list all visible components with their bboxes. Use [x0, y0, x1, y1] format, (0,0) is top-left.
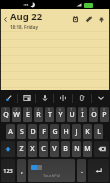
staticText: . [81, 166, 83, 176]
staticText: W [13, 110, 20, 120]
button[interactable]: P [100, 107, 109, 122]
button[interactable]: W [12, 107, 21, 122]
staticText: P [102, 110, 107, 120]
staticText: X [30, 144, 35, 154]
button[interactable]: F [39, 124, 48, 139]
button[interactable]: Hide keyboard [92, 90, 110, 106]
staticText: N [74, 144, 80, 154]
button[interactable]: . [77, 159, 86, 182]
button[interactable]: Layout [18, 90, 35, 106]
staticText: 7 [70, 107, 73, 112]
button[interactable]: L [94, 124, 103, 139]
staticText: B [63, 144, 68, 154]
staticText: H [63, 127, 69, 137]
staticText: C [41, 144, 46, 154]
button[interactable]: Q [1, 107, 10, 122]
staticText: K [85, 127, 90, 137]
staticText: 2 [15, 107, 18, 112]
button[interactable]: K [83, 124, 92, 139]
staticText: Y [58, 110, 63, 120]
button[interactable]: Backspace [94, 141, 109, 157]
staticText: G [52, 127, 58, 137]
button[interactable]: X [28, 141, 37, 157]
button[interactable]: Attach file [82, 9, 95, 30]
button[interactable]: Theme [73, 90, 91, 106]
staticText: Aug 22 [10, 10, 43, 23]
staticText: R [36, 110, 41, 120]
button[interactable]: Z [17, 141, 26, 157]
staticText: 18:18, Friday [10, 24, 38, 30]
button[interactable]: E [23, 107, 32, 122]
button[interactable]: Y [56, 107, 65, 122]
button[interactable]: U [67, 107, 76, 122]
button[interactable]: O [89, 107, 98, 122]
button[interactable]: C [39, 141, 48, 157]
staticText: V [52, 144, 57, 154]
button[interactable]: Space [28, 159, 75, 182]
staticText: I [81, 110, 84, 120]
staticText: T [48, 110, 52, 120]
staticText: 3 [26, 107, 29, 112]
staticText: E [26, 110, 30, 120]
staticText: 9 [92, 107, 95, 112]
button[interactable]: Shift [1, 141, 15, 157]
button[interactable]: Set reminder [69, 9, 82, 30]
staticText: , [21, 166, 23, 176]
button[interactable]: R [34, 107, 43, 122]
button[interactable]: , [17, 159, 26, 182]
button[interactable]: Enter [88, 159, 109, 182]
staticText: Z [19, 144, 24, 154]
button[interactable]: I [78, 107, 87, 122]
staticText: D [30, 127, 36, 137]
staticText: 4 [37, 107, 40, 112]
staticText: 123 [3, 167, 13, 174]
staticText: A [8, 127, 13, 137]
staticText: F [42, 127, 46, 137]
staticText: TouchPal [43, 173, 60, 178]
staticText: S [20, 127, 24, 137]
button[interactable]: Back [0, 9, 10, 30]
button[interactable]: B [61, 141, 70, 157]
staticText: L [97, 127, 101, 137]
button[interactable]: D [28, 124, 37, 139]
staticText: 6 [59, 107, 62, 112]
button[interactable]: More options [95, 9, 108, 30]
staticText: O [91, 110, 97, 120]
button[interactable]: Numbers [1, 159, 15, 182]
button[interactable]: Voice input [36, 90, 53, 106]
staticText: 0 [103, 107, 106, 112]
button[interactable]: V [50, 141, 59, 157]
button[interactable]: Handwriting [0, 90, 17, 106]
button[interactable]: A [6, 124, 15, 139]
staticText: 5 [48, 107, 51, 112]
button[interactable]: T [45, 107, 54, 122]
button[interactable]: M [83, 141, 92, 157]
staticText: M [84, 144, 91, 154]
staticText: Q [3, 110, 9, 120]
button[interactable]: S [17, 124, 26, 139]
button[interactable]: H [61, 124, 70, 139]
button[interactable]: G [50, 124, 59, 139]
staticText: U [69, 110, 75, 120]
staticText: 8 [81, 107, 84, 112]
button[interactable]: J [72, 124, 81, 139]
button[interactable]: Text editing [54, 90, 72, 106]
staticText: J [75, 127, 78, 137]
staticText: 1 [4, 107, 7, 112]
button[interactable]: N [72, 141, 81, 157]
